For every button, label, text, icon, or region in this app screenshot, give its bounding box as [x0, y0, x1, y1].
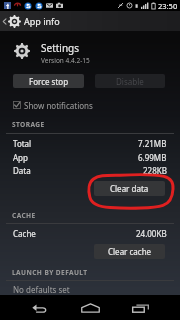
staticText: Disable [116, 76, 144, 87]
staticText: Show notifications [24, 100, 93, 111]
staticText: App info [24, 15, 60, 27]
staticText: 24.00KB [136, 228, 167, 239]
staticText: STORAGE [12, 120, 45, 129]
button[interactable]: Disable [95, 74, 165, 88]
button[interactable]: Clear data [94, 181, 165, 196]
button[interactable]: Clear cache [94, 244, 165, 259]
staticText: Cache [13, 228, 36, 239]
staticText: App [13, 152, 28, 163]
staticText: No defaults set [13, 284, 70, 295]
staticText: Total [13, 138, 32, 149]
staticText: Settings [41, 41, 80, 55]
staticText: LAUNCH BY DEFAULT [12, 268, 88, 277]
staticText: 7.21MB [138, 138, 167, 149]
staticText: Force stop [29, 76, 69, 87]
staticText: Version 4.4.2-15 [41, 56, 90, 65]
staticText: 6.99MB [138, 152, 167, 163]
staticText: Clear cache [108, 246, 152, 257]
button[interactable]: Home [70, 300, 110, 316]
staticText: 228KB [143, 165, 167, 176]
button[interactable]: Back [20, 300, 60, 316]
button[interactable]: Force stop [13, 74, 84, 88]
staticText: CACHE [12, 211, 36, 220]
button[interactable]: Show notifications [13, 99, 93, 111]
staticText: 23:50 [158, 1, 178, 11]
button[interactable]: Recent apps [120, 300, 160, 316]
staticText: Data [13, 165, 31, 176]
button[interactable]: Up [0, 11, 180, 31]
staticText: Clear data [110, 183, 149, 194]
